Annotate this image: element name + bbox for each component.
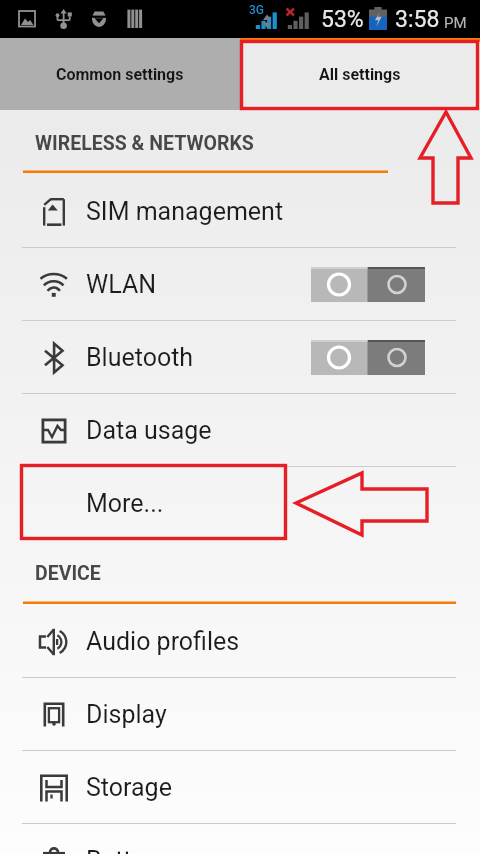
button[interactable]: WLAN (0, 248, 480, 321)
button[interactable]: Audio profiles (0, 605, 480, 678)
button[interactable]: Toggle (311, 267, 425, 302)
staticText: All settings (319, 65, 401, 84)
button[interactable]: All settings (240, 38, 480, 110)
staticText: DEVICE (35, 562, 101, 585)
button[interactable]: Bluetooth (0, 321, 480, 394)
staticText: 53% (321, 6, 364, 33)
button[interactable]: More... (0, 467, 480, 540)
button[interactable]: Common settings (0, 38, 240, 110)
staticText: PM (444, 14, 467, 32)
staticText: Display (86, 700, 167, 729)
staticText: 3:58 (395, 6, 440, 33)
button[interactable]: Data usage (0, 394, 480, 467)
staticText: SIM management (86, 197, 284, 226)
staticText: Audio profiles (86, 627, 240, 656)
staticText: Common settings (56, 65, 184, 84)
button[interactable]: Toggle (311, 340, 425, 375)
staticText: Storage (86, 773, 172, 802)
staticText: Bluetooth (86, 343, 194, 372)
staticText: More... (86, 489, 164, 518)
staticText: 3G (249, 3, 264, 17)
button[interactable]: SIM management (0, 175, 480, 248)
button[interactable]: Storage (0, 751, 480, 824)
button[interactable]: Display (0, 678, 480, 751)
staticText: WLAN (86, 270, 157, 299)
staticText: WIRELESS & NETWORKS (35, 132, 254, 155)
staticText: Battery (86, 846, 166, 854)
staticText: Data usage (86, 416, 212, 445)
button[interactable]: Battery (0, 824, 480, 854)
